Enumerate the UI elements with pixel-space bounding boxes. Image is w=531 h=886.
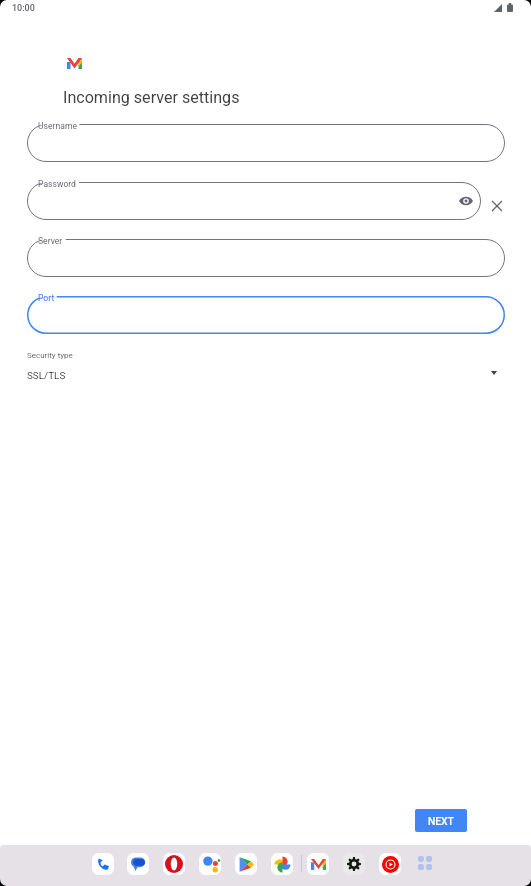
button[interactable]: YouTube Music xyxy=(379,853,401,875)
button[interactable]: Settings xyxy=(343,853,365,875)
button[interactable]: Server xyxy=(27,239,505,277)
staticText: Server xyxy=(38,236,63,246)
staticText: Username xyxy=(38,121,77,131)
button[interactable]: Security type xyxy=(0,345,531,389)
button[interactable]: Username xyxy=(27,124,505,162)
button[interactable]: All apps xyxy=(414,852,436,874)
button[interactable]: NEXT xyxy=(415,809,467,832)
staticText: Security type xyxy=(27,351,73,360)
button[interactable]: Show password xyxy=(455,190,477,212)
button[interactable]: Assistant xyxy=(199,853,221,875)
staticText: Password xyxy=(38,179,76,189)
staticText: Port xyxy=(38,293,55,303)
button[interactable]: Phone xyxy=(92,853,114,875)
staticText: NEXT xyxy=(428,815,454,827)
staticText: SSL/TLS xyxy=(27,370,66,382)
staticText: Incoming server settings xyxy=(63,88,240,107)
button[interactable]: Photos xyxy=(271,853,293,875)
button[interactable]: Remove xyxy=(487,196,506,215)
button[interactable]: Play Store xyxy=(235,853,257,875)
staticText: 10:00 xyxy=(12,3,35,14)
button[interactable]: Password xyxy=(27,182,481,220)
button[interactable]: Port xyxy=(27,296,505,334)
button[interactable]: Gmail xyxy=(307,853,329,875)
button[interactable]: Messages xyxy=(127,853,149,875)
button[interactable]: Opera xyxy=(163,853,185,875)
